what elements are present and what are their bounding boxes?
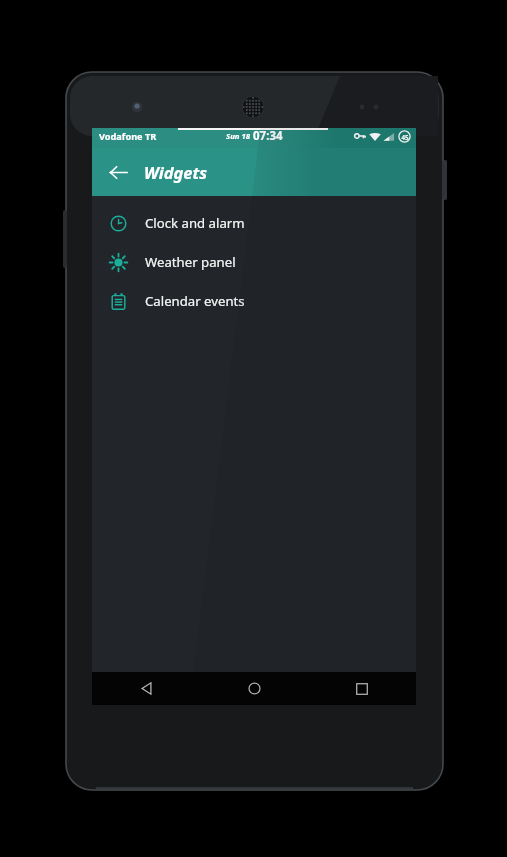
- button[interactable]: Home: [200, 672, 308, 705]
- button[interactable]: Back: [100, 154, 136, 190]
- button[interactable]: Recent apps: [308, 672, 416, 705]
- staticText: Vodafone TR: [99, 130, 157, 143]
- button[interactable]: Back: [92, 672, 200, 705]
- staticText: Calendar events: [145, 292, 245, 310]
- staticText: Widgets: [144, 161, 208, 183]
- button[interactable]: Clock and alarm: [92, 203, 416, 242]
- staticText: 07:34: [253, 128, 283, 144]
- button[interactable]: Calendar events: [92, 281, 416, 320]
- staticText: Clock and alarm: [145, 214, 245, 232]
- staticText: 45: [401, 133, 409, 141]
- staticText: Sun 18: [226, 131, 253, 142]
- button[interactable]: Weather panel: [92, 242, 416, 281]
- staticText: Weather panel: [145, 253, 236, 271]
